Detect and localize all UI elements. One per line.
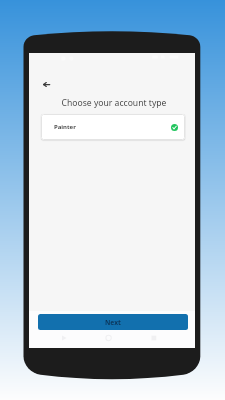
button[interactable]: Next xyxy=(38,314,188,330)
button[interactable]: Back xyxy=(39,77,54,92)
staticText: Painter xyxy=(54,123,76,131)
button[interactable]: Painter xyxy=(41,114,185,140)
staticText: Choose your account type xyxy=(31,97,197,109)
staticText: Next xyxy=(105,318,121,327)
